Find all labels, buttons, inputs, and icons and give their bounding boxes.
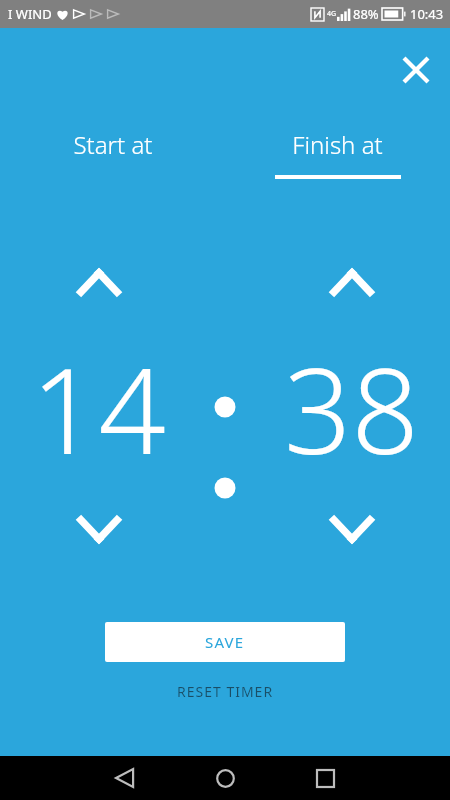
button[interactable]: Start at <box>0 128 225 175</box>
staticText: SAVE <box>205 632 245 652</box>
button[interactable]: Increase <box>317 258 387 306</box>
staticText: Start at <box>73 128 153 161</box>
button[interactable]: Close <box>388 42 444 98</box>
button[interactable]: Recents <box>275 756 375 800</box>
button[interactable]: Home <box>175 756 275 800</box>
button[interactable]: SAVE <box>105 622 345 662</box>
button[interactable]: Finish at <box>225 128 450 179</box>
staticText: 88% <box>353 5 379 23</box>
button[interactable]: Decrease <box>317 505 387 553</box>
button[interactable]: Increase <box>64 258 134 306</box>
staticText: RESET TIMER <box>177 682 274 701</box>
staticText: 14 <box>31 328 166 489</box>
button[interactable]: Decrease <box>64 505 134 553</box>
staticText: 10:43 <box>410 5 444 23</box>
button[interactable]: Back <box>75 756 175 800</box>
staticText: Finish at <box>292 128 383 161</box>
staticText: 4G <box>327 9 337 19</box>
staticText: I WIND <box>8 5 52 23</box>
button[interactable]: RESET TIMER <box>161 676 290 707</box>
staticText: 38 <box>284 328 419 489</box>
